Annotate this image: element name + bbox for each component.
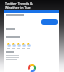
button[interactable] (26, 43, 31, 49)
button[interactable] (21, 43, 26, 49)
button[interactable] (11, 43, 16, 49)
staticText: Twitter Trends & Weather in Tue (5, 1, 33, 10)
button[interactable] (6, 43, 11, 49)
button[interactable]: Open (41, 19, 58, 25)
button[interactable] (16, 43, 21, 49)
